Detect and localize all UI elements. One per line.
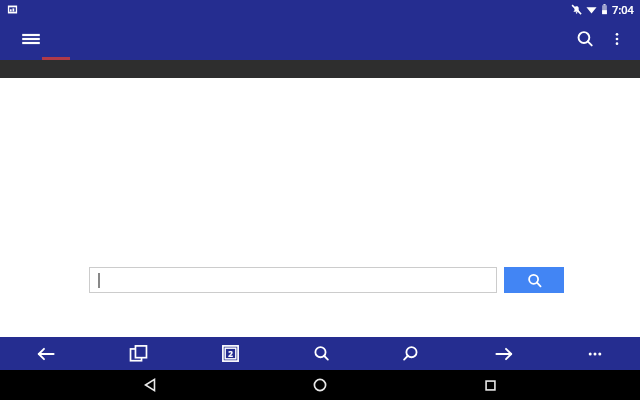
staticText: 7:04 (612, 2, 634, 17)
button[interactable]: More options (602, 24, 632, 54)
button[interactable]: Back (0, 337, 92, 370)
button[interactable]: Search (568, 22, 602, 56)
button[interactable]: Recent apps (470, 370, 510, 400)
button[interactable]: Open navigation drawer (14, 22, 48, 56)
button[interactable]: Forward (458, 337, 549, 370)
button[interactable]: Find in page (276, 337, 367, 370)
button[interactable]: Home (300, 370, 340, 400)
staticText: 2 (228, 348, 233, 359)
button[interactable]: Search (504, 267, 564, 293)
button[interactable]: Search (367, 337, 458, 370)
button[interactable]: Pages (92, 337, 184, 370)
button[interactable]: More options (549, 337, 640, 370)
button[interactable]: Tabs, 2 open (184, 337, 276, 370)
button[interactable]: Back (130, 370, 170, 400)
button[interactable] (89, 267, 497, 293)
